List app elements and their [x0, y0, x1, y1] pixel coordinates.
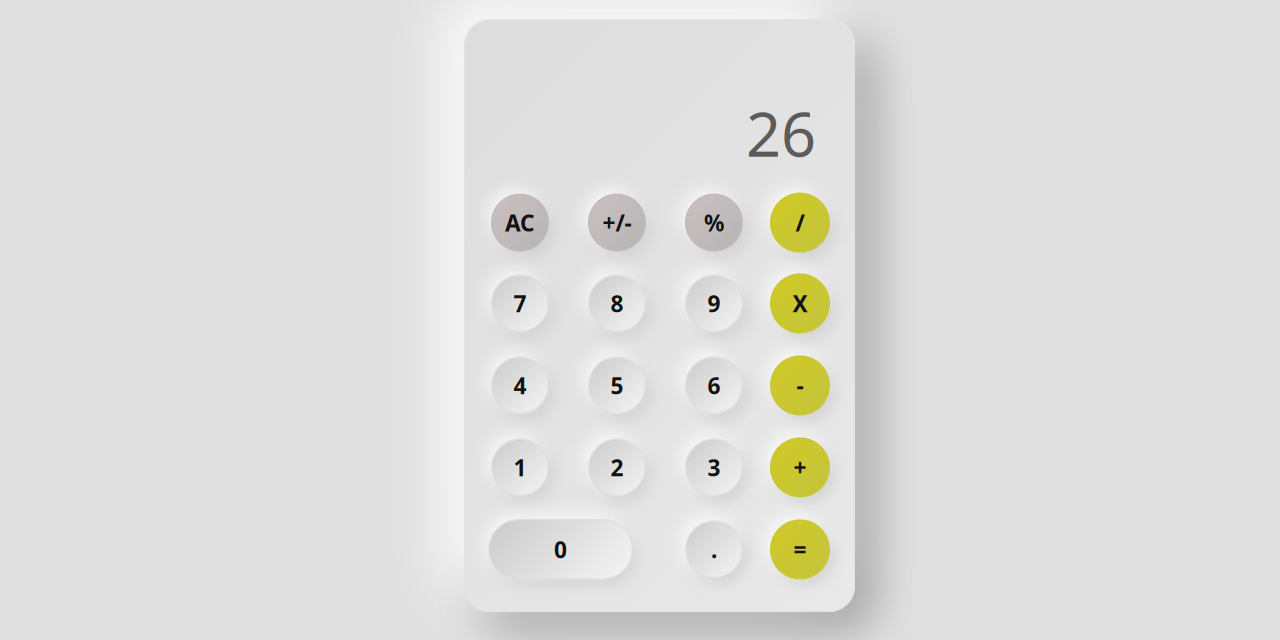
- button[interactable]: +: [770, 437, 830, 497]
- staticText: 6: [707, 370, 720, 400]
- button[interactable]: X: [770, 273, 830, 333]
- staticText: %: [704, 207, 724, 238]
- staticText: AC: [505, 207, 535, 238]
- staticText: X: [792, 288, 807, 318]
- staticText: 7: [513, 288, 526, 318]
- button[interactable]: %: [685, 194, 743, 252]
- button[interactable]: 7: [491, 274, 549, 332]
- staticText: /: [795, 207, 804, 238]
- staticText: 0: [554, 534, 567, 564]
- staticText: -: [796, 370, 803, 400]
- staticText: 5: [610, 370, 623, 400]
- staticText: 4: [513, 370, 526, 400]
- staticText: 1: [513, 452, 526, 482]
- button[interactable]: AC: [491, 194, 549, 252]
- button[interactable]: /: [770, 193, 830, 253]
- staticText: +/-: [602, 207, 631, 238]
- staticText: 2: [610, 452, 623, 482]
- button[interactable]: 0: [488, 519, 633, 580]
- button[interactable]: .: [685, 520, 743, 578]
- button[interactable]: 1: [491, 438, 549, 496]
- button[interactable]: -: [770, 355, 830, 415]
- staticText: =: [793, 534, 806, 564]
- button[interactable]: +/-: [588, 194, 646, 252]
- staticText: +: [793, 452, 806, 482]
- button[interactable]: 9: [685, 274, 743, 332]
- button[interactable]: 2: [588, 438, 646, 496]
- button[interactable]: =: [770, 519, 830, 579]
- staticText: 9: [707, 288, 720, 318]
- button[interactable]: 6: [685, 356, 743, 414]
- button[interactable]: 3: [685, 438, 743, 496]
- staticText: 26: [746, 92, 816, 174]
- staticText: 8: [610, 288, 623, 318]
- button[interactable]: 8: [588, 274, 646, 332]
- button[interactable]: 5: [588, 356, 646, 414]
- staticText: 3: [707, 452, 720, 482]
- button[interactable]: 4: [491, 356, 549, 414]
- staticText: .: [711, 534, 717, 564]
